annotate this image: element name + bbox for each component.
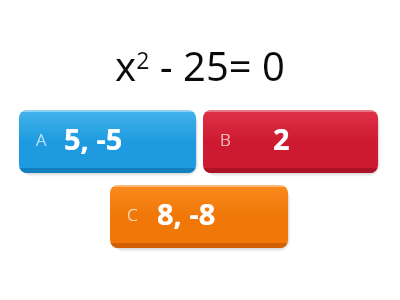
staticText: 2	[273, 119, 290, 158]
staticText: x2 - 25= 0	[115, 38, 285, 92]
staticText: 8, -8	[157, 194, 216, 233]
staticText: B	[220, 128, 231, 151]
button[interactable]: Answer C: 8, -8	[110, 185, 288, 248]
button[interactable]: Answer A: 5, -5	[19, 110, 196, 173]
staticText: C	[127, 203, 138, 226]
button[interactable]: Answer B: 2	[203, 110, 378, 173]
staticText: A	[36, 128, 47, 151]
staticText: 5, -5	[64, 119, 123, 158]
